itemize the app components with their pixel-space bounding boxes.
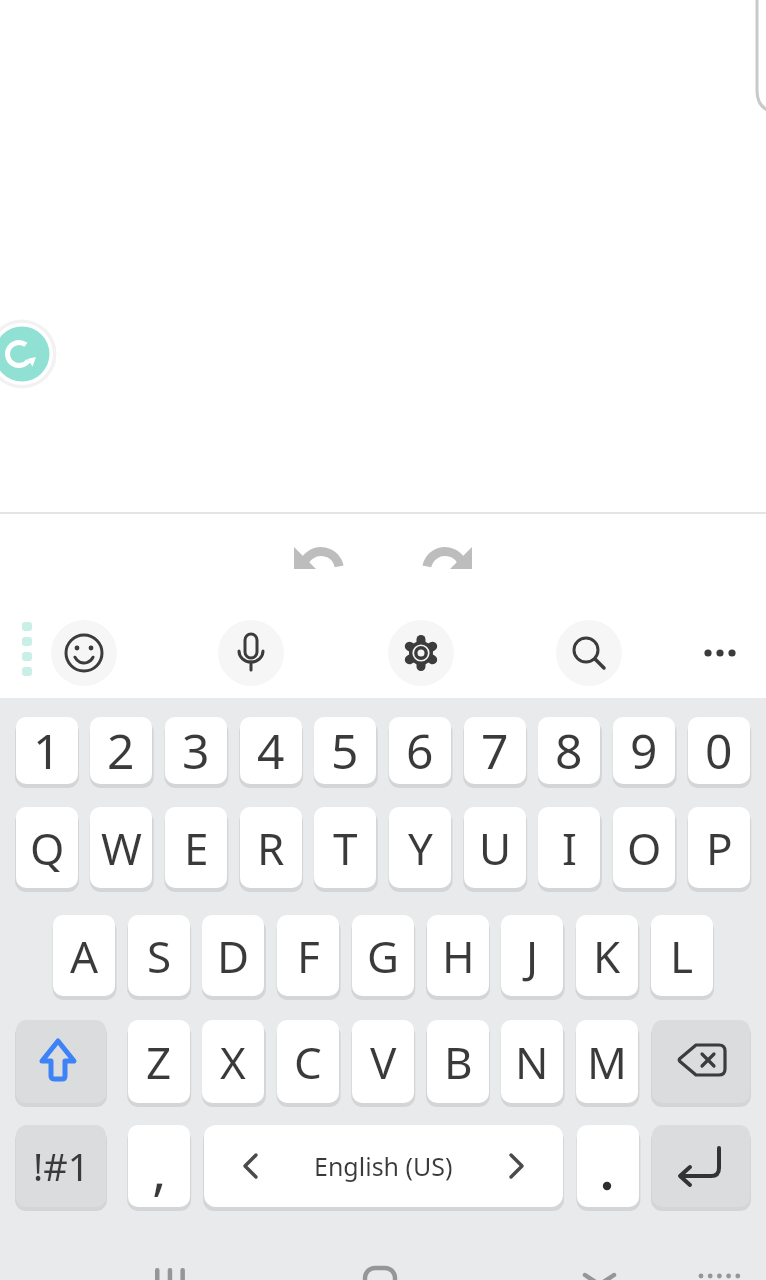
staticText: K xyxy=(593,926,621,986)
button[interactable]: 6 xyxy=(389,717,451,784)
staticText: B xyxy=(444,1032,473,1092)
button[interactable]: English (US) xyxy=(204,1125,563,1207)
staticText: !#1 xyxy=(33,1140,90,1192)
button[interactable] xyxy=(16,1020,106,1103)
staticText: D xyxy=(217,926,250,986)
button[interactable] xyxy=(652,1125,750,1207)
staticText: 9 xyxy=(630,718,658,783)
button[interactable] xyxy=(652,1020,750,1103)
button[interactable]: U xyxy=(464,807,526,888)
staticText: 1 xyxy=(33,718,61,783)
staticText: 3 xyxy=(182,718,210,783)
button[interactable] xyxy=(51,620,117,686)
button[interactable]: M xyxy=(576,1020,638,1103)
button[interactable]: N xyxy=(501,1020,563,1103)
button[interactable]: F xyxy=(277,915,339,996)
button[interactable]: K xyxy=(576,915,638,996)
button[interactable]: D xyxy=(202,915,264,996)
button[interactable]: V xyxy=(352,1020,414,1103)
button[interactable]: L xyxy=(651,915,713,996)
staticText: T xyxy=(333,818,358,878)
button[interactable]: O xyxy=(613,807,675,888)
button[interactable] xyxy=(577,1125,639,1207)
staticText: V xyxy=(370,1032,397,1092)
staticText: N xyxy=(515,1032,549,1092)
staticText: J xyxy=(526,926,539,986)
button[interactable] xyxy=(687,620,753,686)
staticText: O xyxy=(627,818,662,878)
staticText: 0 xyxy=(705,718,733,783)
staticText: H xyxy=(442,926,475,986)
staticText: Q xyxy=(30,818,65,878)
button[interactable]: R xyxy=(240,807,302,888)
button[interactable] xyxy=(218,620,284,686)
button[interactable]: T xyxy=(314,807,376,888)
button[interactable] xyxy=(388,620,454,686)
button[interactable]: 9 xyxy=(613,717,675,784)
staticText: F xyxy=(297,926,320,986)
staticText: X xyxy=(220,1032,246,1092)
button[interactable]: 8 xyxy=(538,717,600,784)
button[interactable]: X xyxy=(202,1020,264,1103)
staticText: M xyxy=(587,1032,627,1092)
staticText: W xyxy=(101,818,142,878)
staticText: , xyxy=(152,1132,167,1206)
staticText: Z xyxy=(146,1032,172,1092)
button[interactable] xyxy=(0,318,58,390)
staticText: 4 xyxy=(257,718,285,783)
button[interactable]: G xyxy=(352,915,414,996)
button[interactable]: 1 xyxy=(16,717,78,784)
button[interactable]: C xyxy=(277,1020,339,1103)
staticText: P xyxy=(706,818,733,878)
staticText: S xyxy=(147,926,172,986)
button[interactable]: H xyxy=(427,915,489,996)
button[interactable]: 2 xyxy=(90,717,152,784)
staticText: E xyxy=(184,818,209,878)
staticText: G xyxy=(367,926,400,986)
button[interactable]: P xyxy=(688,807,750,888)
staticText: R xyxy=(257,818,285,878)
staticText: I xyxy=(562,818,577,878)
button[interactable]: E xyxy=(165,807,227,888)
staticText: 8 xyxy=(555,718,583,783)
button[interactable]: 0 xyxy=(688,717,750,784)
button[interactable]: A xyxy=(53,915,115,996)
button[interactable]: Y xyxy=(389,807,451,888)
staticText: Y xyxy=(408,818,433,878)
button[interactable] xyxy=(556,620,622,686)
button[interactable]: J xyxy=(501,915,563,996)
button[interactable]: Z xyxy=(128,1020,190,1103)
button[interactable]: W xyxy=(90,807,152,888)
staticText: 5 xyxy=(331,718,359,783)
staticText: 2 xyxy=(107,718,135,783)
staticText: English (US) xyxy=(314,1149,453,1183)
button[interactable]: 5 xyxy=(314,717,376,784)
button[interactable]: , xyxy=(128,1125,190,1207)
button[interactable]: 4 xyxy=(240,717,302,784)
button[interactable]: Q xyxy=(16,807,78,888)
button[interactable]: !#1 xyxy=(16,1125,106,1207)
button[interactable]: 7 xyxy=(464,717,526,784)
button[interactable]: 3 xyxy=(165,717,227,784)
staticText: L xyxy=(670,926,694,986)
button[interactable]: B xyxy=(427,1020,489,1103)
staticText: 6 xyxy=(406,718,434,783)
button[interactable]: S xyxy=(128,915,190,996)
staticText: U xyxy=(479,818,512,878)
staticText: A xyxy=(70,926,99,986)
staticText: C xyxy=(294,1032,322,1092)
button[interactable]: I xyxy=(538,807,600,888)
staticText: 7 xyxy=(481,718,509,783)
